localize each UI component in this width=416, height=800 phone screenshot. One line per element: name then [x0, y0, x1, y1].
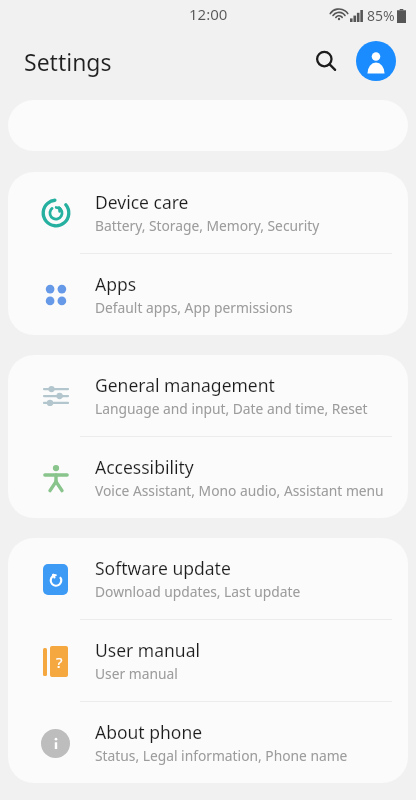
button[interactable]: Device care — [8, 172, 408, 253]
staticText: Software update — [95, 556, 231, 580]
staticText: Default apps, App permissions — [95, 298, 293, 317]
staticText: User manual — [95, 638, 200, 662]
staticText: Settings — [24, 46, 112, 77]
button[interactable]: Software update — [8, 538, 408, 619]
staticText: 12:00 — [189, 4, 228, 24]
staticText: User manual — [95, 664, 178, 683]
staticText: Language and input, Date and time, Reset — [95, 399, 368, 418]
staticText: 85% — [367, 6, 395, 25]
staticText: General management — [95, 373, 275, 397]
button[interactable]: Account — [356, 41, 396, 81]
staticText: Accessibility — [95, 455, 194, 479]
button[interactable]: About phone — [8, 702, 408, 783]
staticText: Download updates, Last update — [95, 582, 301, 601]
staticText: ? — [56, 652, 63, 672]
button[interactable]: ? — [8, 620, 408, 701]
button[interactable]: Accessibility — [8, 437, 408, 518]
staticText: About phone — [95, 720, 203, 744]
staticText: Voice Assistant, Mono audio, Assistant m… — [95, 481, 384, 500]
staticText: Status, Legal information, Phone name — [95, 746, 348, 765]
button[interactable]: General management — [8, 355, 408, 436]
staticText: Device care — [95, 190, 189, 214]
button[interactable]: Search — [304, 39, 348, 83]
button[interactable]: Apps — [8, 254, 408, 335]
staticText: Battery, Storage, Memory, Security — [95, 216, 320, 235]
staticText: Apps — [95, 272, 137, 296]
